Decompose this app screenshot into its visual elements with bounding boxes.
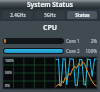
staticText: 2%	[83, 38, 97, 44]
button[interactable]: 2.4GHz	[3, 11, 33, 19]
other: CPU history chart	[3, 57, 97, 89]
staticText: 100%	[5, 58, 14, 63]
staticText: Status	[75, 12, 90, 18]
button[interactable]: 5GHz	[35, 11, 65, 19]
staticText: Core 1	[66, 38, 83, 44]
staticText: 50%	[5, 70, 12, 75]
staticText: System Status	[27, 0, 73, 9]
staticText: 2.4GHz	[10, 12, 26, 18]
staticText: 0%	[5, 83, 10, 88]
button[interactable]: Status	[67, 11, 97, 19]
staticText: CPU	[0, 23, 100, 33]
staticText: 5GHz	[44, 12, 56, 18]
button[interactable]: Core 2	[3, 46, 97, 55]
staticText: Core 2	[66, 48, 83, 54]
button[interactable]: Core 1	[3, 36, 97, 45]
staticText: 100%	[83, 48, 97, 54]
